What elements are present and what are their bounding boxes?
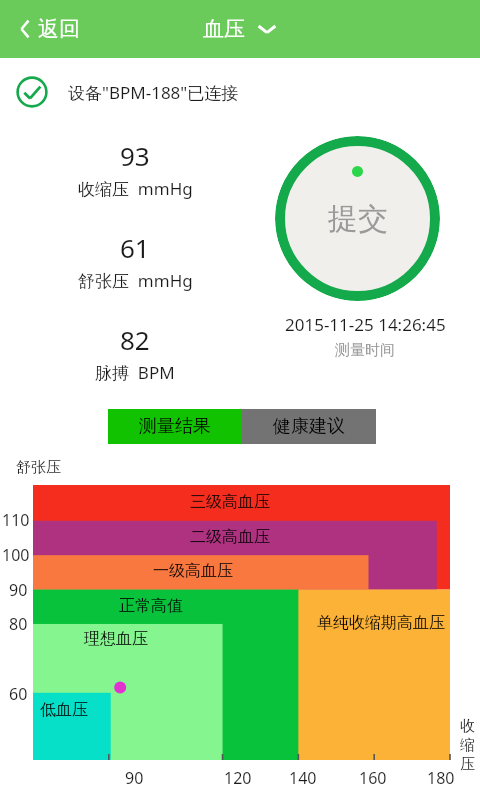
staticText: 返回 [38,16,80,42]
staticText: 93 [120,138,150,173]
staticText: 缩 [460,736,475,755]
staticText: 80 [9,613,28,635]
staticText: 收 [460,717,475,736]
staticText: 提交 [328,200,388,238]
staticText: 90 [125,767,144,789]
staticText: 脉搏 BPM [95,361,175,384]
staticText: 舒张压 [16,458,61,477]
staticText: 二级高血压 [190,527,270,547]
staticText: 100 [2,544,30,566]
staticText: 140 [289,767,317,789]
button[interactable]: 提交 [275,136,440,301]
staticText: 理想血压 [84,629,148,649]
button[interactable]: 返回 [12,10,86,48]
button[interactable]: 测量结果 [108,409,242,444]
staticText: 110 [2,509,30,531]
staticText: 61 [120,230,150,265]
staticText: 180 [427,767,455,789]
staticText: 低血压 [40,700,88,720]
staticText: 血压 [203,16,245,42]
staticText: 2015-11-25 14:26:45 [285,313,446,336]
button[interactable]: 健康建议 [242,409,376,444]
staticText: 收缩压 mmHg [78,177,193,200]
staticText: 健康建议 [273,415,345,438]
staticText: 60 [9,683,28,705]
staticText: 单纯收缩期高血压 [317,613,445,633]
staticText: 三级高血压 [190,492,270,512]
staticText: 测量时间 [335,341,395,360]
staticText: 舒张压 mmHg [78,269,193,292]
staticText: 90 [9,579,28,601]
staticText: 正常高值 [119,596,183,616]
staticText: 测量结果 [139,415,211,438]
staticText: 160 [359,767,387,789]
staticText: 压 [460,755,475,774]
staticText: 设备"BPM-188"已连接 [68,81,239,104]
button[interactable]: 血压 [195,10,285,48]
staticText: 120 [224,767,252,789]
button[interactable]: 设备"BPM-188"已连接 [0,74,480,110]
staticText: 一级高血压 [153,561,233,581]
staticText: 82 [120,322,150,357]
